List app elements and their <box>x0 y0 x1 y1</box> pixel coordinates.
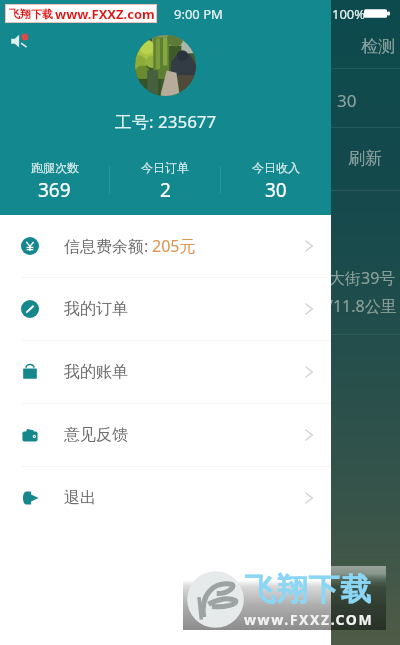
staticText: 信息费余额: <box>64 235 149 257</box>
staticText: 今日订单 <box>141 160 189 175</box>
staticText: 大街39号 <box>329 267 396 289</box>
staticText: 检测 <box>361 36 395 57</box>
button[interactable]: 今日订单 <box>110 160 220 200</box>
staticText: 刷新 <box>348 148 382 169</box>
staticText: 369 <box>38 177 71 200</box>
staticText: 我的订单 <box>64 299 128 319</box>
staticText: /11.8公里 <box>327 295 397 317</box>
staticText: 今日收入 <box>252 160 300 175</box>
staticText: 跑腿次数 <box>31 160 79 175</box>
staticText: 飞翔下载 <box>244 570 372 609</box>
button[interactable]: 我的订单 <box>0 278 331 340</box>
staticText: 100% <box>332 5 366 23</box>
other: Notifications muted <box>9 30 31 52</box>
staticText: 9:00 PM <box>174 5 223 23</box>
staticText: 2 <box>160 177 171 200</box>
button[interactable]: 意见反馈 <box>0 404 331 466</box>
button[interactable]: 退出 <box>0 467 331 529</box>
staticText: 我的账单 <box>64 362 128 382</box>
button[interactable]: 今日收入 <box>221 160 331 200</box>
button[interactable]: 信息费余额: <box>0 215 331 277</box>
staticText: www.FXXZ.COM <box>244 610 374 629</box>
staticText: 205元 <box>152 235 196 257</box>
button[interactable]: 跑腿次数 <box>0 160 109 200</box>
staticText: www.FXXZ.com <box>55 5 155 22</box>
staticText: 意见反馈 <box>64 425 128 445</box>
button[interactable]: Profile photo <box>135 35 196 96</box>
staticText: 退出 <box>64 488 96 508</box>
staticText: 30 <box>337 89 357 112</box>
button[interactable]: 我的账单 <box>0 341 331 403</box>
staticText: 30 <box>265 177 287 200</box>
staticText: 飞翔下载 <box>9 7 53 21</box>
staticText: 工号: 235677 <box>115 110 217 133</box>
